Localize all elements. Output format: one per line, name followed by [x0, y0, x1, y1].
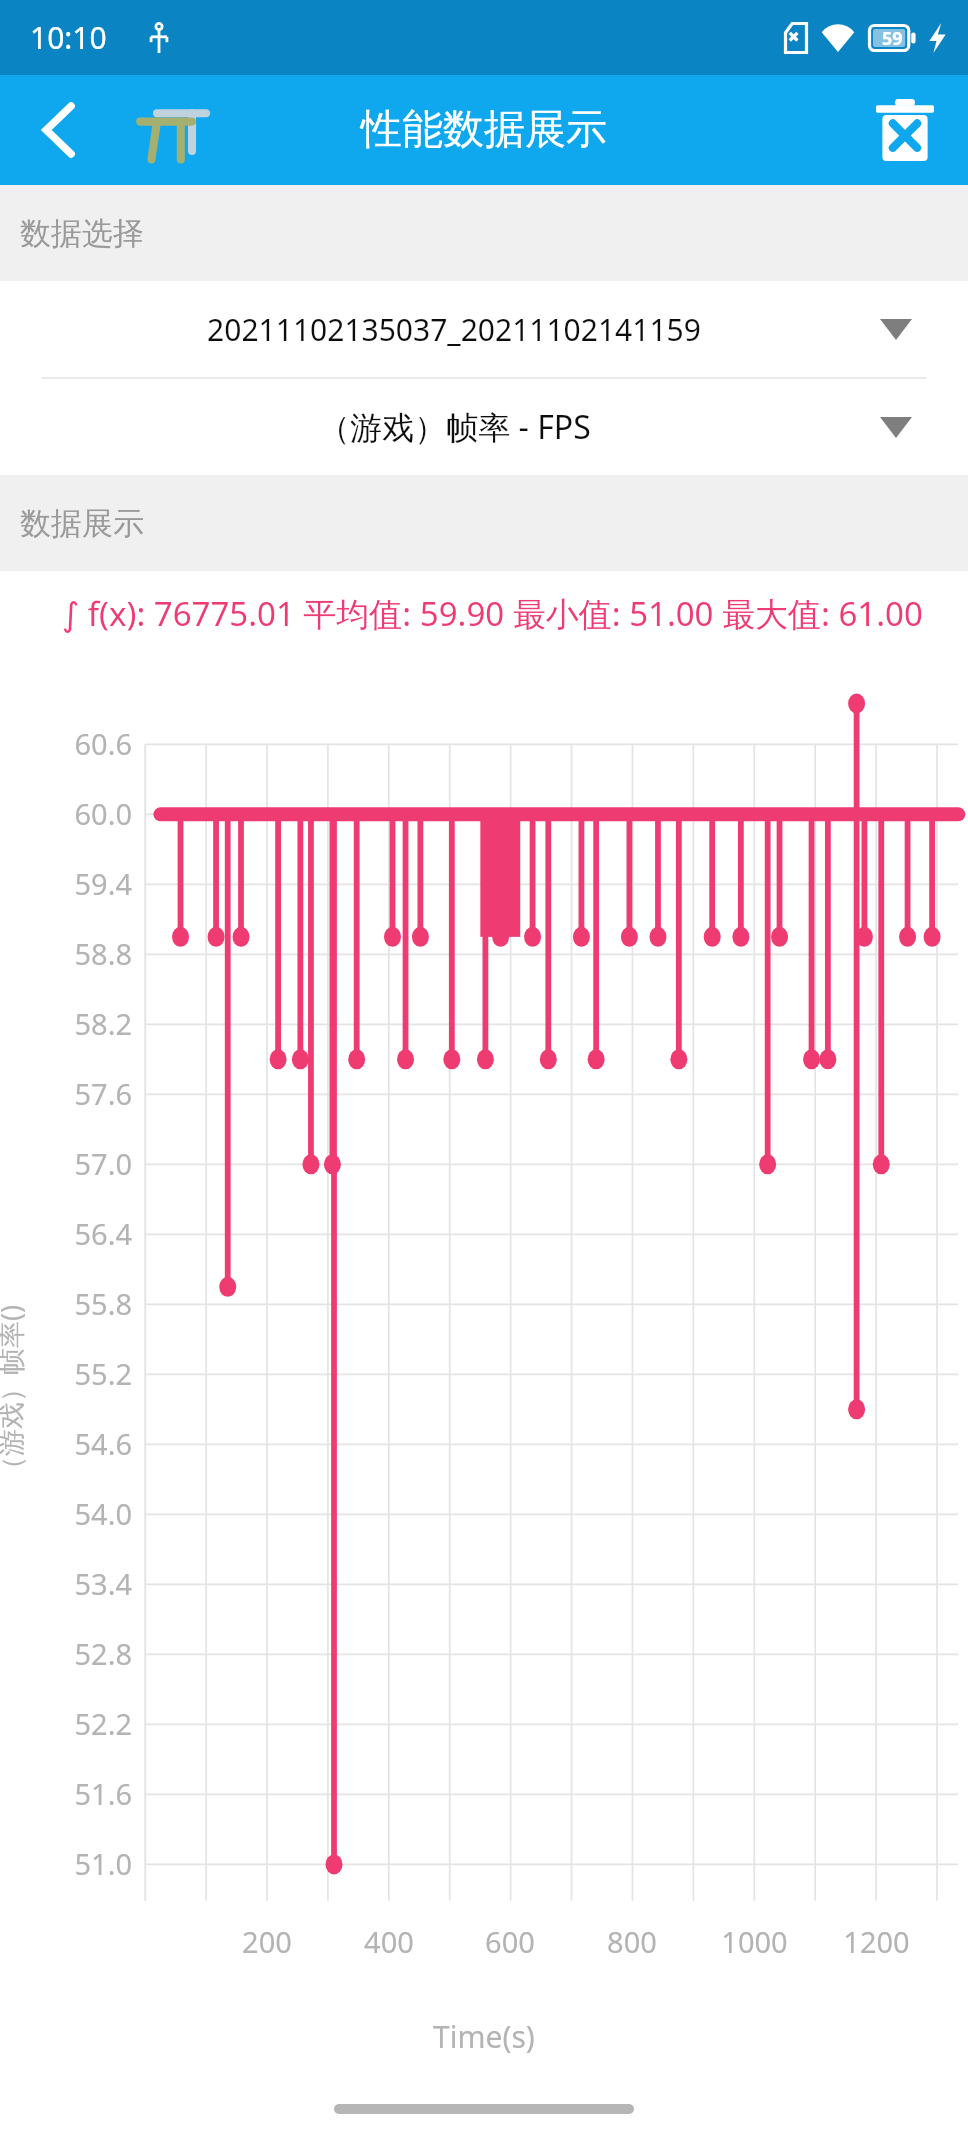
staticText: 57.0: [74, 1144, 132, 1183]
staticText: 60.6: [74, 724, 132, 763]
staticText: 数据选择: [20, 214, 144, 253]
staticText: 性能数据展示: [361, 104, 607, 156]
staticText: 54.6: [74, 1424, 132, 1463]
staticText: 55.2: [74, 1354, 132, 1393]
button[interactable]: 20211102135037_20211102141159: [0, 281, 968, 377]
button[interactable]: Delete: [862, 87, 948, 173]
staticText: 20211102135037_20211102141159: [207, 309, 701, 350]
button[interactable]: （游戏）帧率 - FPS: [0, 379, 968, 475]
staticText: Time(s): [433, 2016, 535, 2057]
staticText: 数据展示: [20, 504, 144, 543]
staticText: 1000: [721, 1922, 788, 1961]
staticText: 400: [364, 1922, 414, 1961]
staticText: 55.8: [74, 1284, 132, 1323]
staticText: 57.6: [74, 1074, 132, 1113]
staticText: （游戏）帧率(): [0, 1304, 29, 1483]
staticText: 800: [607, 1922, 657, 1961]
staticText: 52.2: [74, 1704, 132, 1743]
staticText: 59.4: [74, 864, 132, 903]
staticText: 51.0: [74, 1844, 132, 1883]
staticText: 51.6: [74, 1774, 132, 1813]
staticText: 58.2: [74, 1004, 132, 1043]
staticText: ∫ f(x): 76775.01 平均值: 59.90 最小值: 51.00 最…: [62, 591, 923, 636]
staticText: 10:10: [30, 17, 107, 58]
staticText: 52.8: [74, 1634, 132, 1673]
staticText: 60.0: [74, 794, 132, 833]
staticText: 59: [882, 26, 903, 51]
staticText: 600: [485, 1922, 535, 1961]
staticText: 58.8: [74, 934, 132, 973]
staticText: 1200: [843, 1922, 910, 1961]
staticText: （游戏）帧率 - FPS: [318, 405, 591, 449]
staticText: 54.0: [74, 1494, 132, 1533]
staticText: 56.4: [74, 1214, 132, 1253]
staticText: 200: [242, 1922, 292, 1961]
button[interactable]: Back: [16, 87, 102, 173]
staticText: 53.4: [74, 1564, 132, 1603]
